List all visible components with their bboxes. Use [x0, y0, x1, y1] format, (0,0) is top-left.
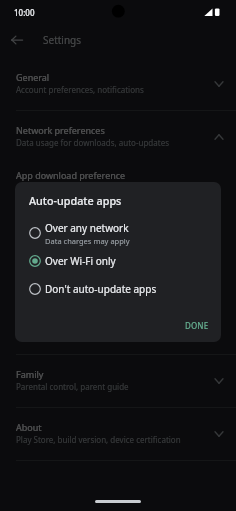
staticText: DONE [185, 320, 209, 331]
button[interactable]: Don't auto-update apps [15, 276, 221, 302]
staticText: Auto-update apps [29, 193, 122, 208]
staticText: 10:00 [14, 7, 35, 18]
staticText: Play Store, build version, device certif… [16, 434, 181, 445]
button[interactable]: Back [5, 28, 29, 52]
staticText: Over Wi-Fi only [45, 254, 116, 268]
button[interactable]: DONE [179, 317, 215, 334]
button[interactable]: Family [0, 355, 236, 407]
button[interactable]: Over any network [15, 218, 221, 248]
button[interactable]: General [0, 58, 236, 110]
staticText: Data usage for downloads, auto-updates [16, 137, 169, 148]
staticText: Over any network [45, 221, 129, 235]
staticText: App download preference [16, 169, 126, 181]
staticText: Family [16, 368, 44, 380]
staticText: Parental control, parent guide [16, 381, 129, 392]
button[interactable]: Over Wi-Fi only [15, 248, 221, 274]
staticText: General [16, 71, 50, 83]
staticText: Settings [43, 33, 82, 47]
staticText: Network preferences [16, 124, 105, 136]
staticText: Account preferences, notifications [16, 84, 144, 95]
staticText: Don't auto-update apps [45, 282, 157, 296]
staticText: About [16, 421, 42, 433]
button[interactable]: About [0, 408, 236, 460]
button[interactable]: Network preferences [0, 111, 236, 163]
staticText: Data charges may apply [45, 236, 130, 246]
